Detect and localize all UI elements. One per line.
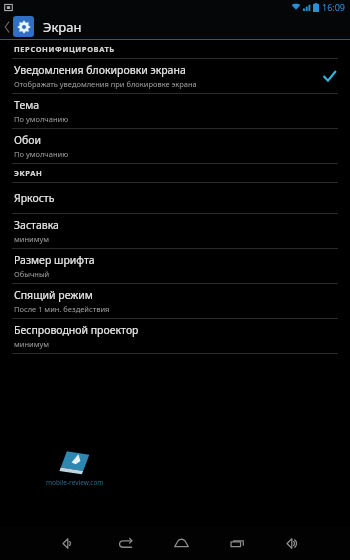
staticText: По умолчанию (14, 149, 69, 159)
staticText: Спящий режим (14, 288, 93, 302)
other: Back (4, 22, 10, 32)
staticText: Тема (14, 98, 40, 112)
button[interactable]: Back (0, 14, 350, 39)
button[interactable]: Обои (0, 129, 350, 164)
staticText: ПЕРСОНИФИЦИРОВАТЬ (14, 44, 115, 54)
button[interactable]: Home (164, 526, 198, 560)
staticText: 16:09 (322, 1, 346, 13)
staticText: Обои (14, 133, 42, 147)
staticText: Беспроводной проектор (14, 323, 139, 337)
staticText: Экран (43, 18, 82, 36)
button[interactable]: Яркость (0, 183, 350, 214)
staticText: минимум (14, 339, 50, 349)
staticText: Заставка (14, 218, 59, 232)
staticText: Отображать уведомления при блокировке эк… (14, 79, 197, 89)
staticText: минимум (14, 234, 50, 244)
button[interactable]: Спящий режим (0, 284, 350, 319)
staticText: mobile-review.com (46, 478, 104, 487)
staticText: По умолчанию (14, 114, 69, 124)
button[interactable]: Back (108, 526, 142, 560)
button[interactable]: Тема (0, 94, 350, 129)
staticText: Яркость (14, 191, 55, 205)
staticText: Размер шрифта (14, 253, 95, 267)
other: Enabled (323, 70, 336, 83)
button[interactable]: Volume up (276, 526, 310, 560)
staticText: Обычный (14, 269, 50, 279)
button[interactable]: Беспроводной проектор (0, 319, 350, 354)
staticText: После 1 мин. бездействия (14, 304, 110, 314)
button[interactable]: Volume down (52, 526, 86, 560)
staticText: ЭКРАН (14, 168, 43, 178)
staticText: Уведомления блокировки экрана (14, 63, 186, 77)
button[interactable]: Заставка (0, 214, 350, 249)
button[interactable]: Уведомления блокировки экрана (0, 59, 350, 94)
button[interactable]: Размер шрифта (0, 249, 350, 284)
button[interactable]: Recent apps (220, 526, 254, 560)
